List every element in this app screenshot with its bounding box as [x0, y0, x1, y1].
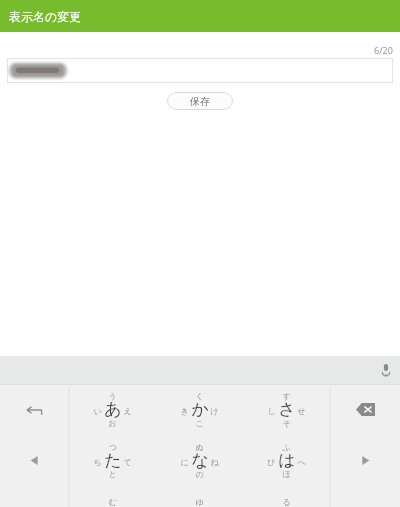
staticText: さ: [278, 399, 296, 420]
staticText: に: [180, 457, 189, 467]
staticText: く: [195, 391, 204, 401]
staticText: お: [108, 418, 117, 428]
staticText: む: [108, 497, 117, 507]
button[interactable]: た: [69, 435, 156, 486]
button[interactable]: な: [156, 435, 243, 486]
staticText: こ: [195, 418, 204, 428]
staticText: き: [180, 406, 189, 416]
button[interactable]: Cursor left: [0, 435, 69, 486]
staticText: ゆ: [195, 497, 204, 507]
staticText: へ: [297, 457, 306, 467]
staticText: ふ: [282, 442, 291, 452]
staticText: そ: [282, 418, 291, 428]
staticText: ぬ: [195, 442, 204, 452]
button[interactable]: は: [243, 435, 330, 486]
button[interactable]: Backspace: [330, 384, 400, 435]
other: Cursor right: [361, 455, 370, 466]
button[interactable]: ゆ: [156, 486, 243, 507]
staticText: ひ: [267, 457, 276, 467]
other: Backspace: [356, 403, 375, 416]
staticText: た: [104, 450, 122, 471]
other: Cursor left: [30, 455, 39, 466]
staticText: い: [93, 406, 102, 416]
staticText: 6/20: [374, 44, 393, 56]
staticText: と: [108, 469, 117, 479]
staticText: の: [195, 469, 204, 479]
button[interactable]: Undo: [0, 384, 69, 435]
button[interactable]: あ: [69, 384, 156, 435]
button[interactable]: Cursor right: [330, 435, 400, 486]
staticText: る: [282, 497, 291, 507]
staticText: ね: [210, 457, 219, 467]
button[interactable]: [7, 58, 393, 83]
staticText: て: [123, 457, 132, 467]
button[interactable]: 保存: [167, 92, 233, 110]
staticText: あ: [104, 399, 122, 420]
staticText: か: [191, 399, 209, 420]
staticText: う: [108, 391, 117, 401]
staticText: な: [191, 450, 209, 471]
staticText: つ: [108, 442, 117, 452]
staticText: ち: [93, 457, 102, 467]
button[interactable]: か: [156, 384, 243, 435]
staticText: ほ: [282, 469, 291, 479]
button[interactable]: さ: [243, 384, 330, 435]
staticText: え: [123, 406, 132, 416]
other: Undo: [25, 404, 44, 416]
staticText: は: [278, 450, 296, 471]
staticText: け: [210, 406, 219, 416]
staticText: し: [267, 406, 276, 416]
button[interactable]: る: [243, 486, 330, 507]
staticText: 表示名の変更: [9, 9, 82, 24]
button[interactable]: む: [69, 486, 156, 507]
button[interactable]: Voice input: [372, 356, 400, 384]
staticText: せ: [297, 406, 306, 416]
staticText: す: [282, 391, 291, 401]
staticText: 保存: [190, 95, 210, 108]
